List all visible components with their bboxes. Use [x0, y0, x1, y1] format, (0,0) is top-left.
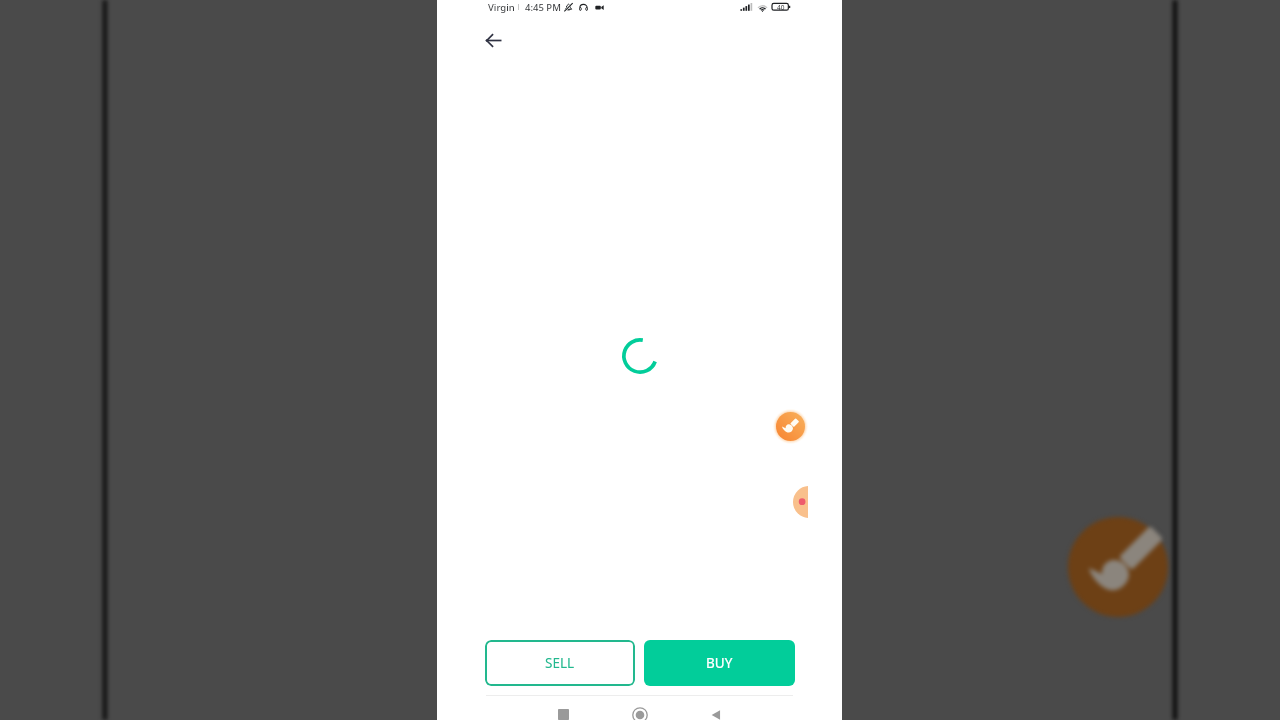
- staticText: 4:45 PM: [525, 1, 561, 14]
- button[interactable]: Back: [477, 24, 509, 56]
- button[interactable]: BUY: [644, 640, 795, 686]
- button[interactable]: Back: [703, 702, 729, 720]
- staticText: 40: [777, 3, 785, 12]
- staticText: Virgin: [488, 1, 515, 14]
- button[interactable]: Change theme: [776, 412, 805, 441]
- button[interactable]: SELL: [485, 640, 635, 686]
- button[interactable]: Pick colour: [793, 486, 808, 518]
- staticText: SELL: [545, 654, 575, 672]
- button[interactable]: Home: [627, 702, 653, 720]
- staticText: BUY: [706, 654, 733, 672]
- button[interactable]: Recent apps: [550, 702, 576, 720]
